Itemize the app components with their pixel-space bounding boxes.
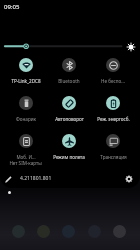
staticText: Нет SIM-карты bbox=[9, 160, 42, 166]
staticText: Не беспо… bbox=[101, 78, 125, 84]
button[interactable]: App 1 bbox=[12, 225, 25, 238]
staticText: TP-Link_2DC8 bbox=[11, 78, 41, 84]
staticText: Фонарик bbox=[16, 116, 36, 122]
staticText: Моб. И… bbox=[16, 154, 36, 160]
button[interactable]: Не беспо… bbox=[91, 46, 135, 84]
staticText: 4.211801.801 bbox=[20, 175, 52, 182]
button[interactable]: Автоповорот bbox=[47, 84, 91, 122]
button[interactable]: App 2 bbox=[37, 225, 50, 238]
button[interactable]: Фонарик bbox=[4, 84, 47, 122]
button[interactable]: TP-Link_2DC8 bbox=[4, 46, 47, 84]
staticText: 09:05 bbox=[4, 3, 20, 11]
staticText: Автоповорот bbox=[55, 116, 84, 122]
button[interactable]: App 5 bbox=[113, 225, 126, 238]
button[interactable]: Bluetooth bbox=[47, 46, 91, 84]
staticText: Режим полета bbox=[53, 154, 85, 160]
staticText: Реж. энергосб. bbox=[97, 116, 130, 122]
button[interactable]: App 3 bbox=[62, 225, 75, 238]
button[interactable]: Edit tiles bbox=[2, 173, 14, 185]
button[interactable]: Settings bbox=[123, 173, 135, 185]
staticText: Трансляция bbox=[100, 154, 127, 160]
button[interactable]: Auto brightness bbox=[124, 40, 137, 53]
button[interactable]: Brightness bbox=[3, 38, 123, 55]
button[interactable]: Моб. И… bbox=[4, 122, 47, 160]
button[interactable]: Режим полета bbox=[47, 122, 91, 160]
button[interactable]: Реж. энергосб. bbox=[91, 84, 135, 122]
staticText: Bluetooth bbox=[58, 78, 80, 84]
button[interactable]: App 4 bbox=[88, 225, 101, 238]
button[interactable]: Трансляция bbox=[91, 122, 135, 160]
